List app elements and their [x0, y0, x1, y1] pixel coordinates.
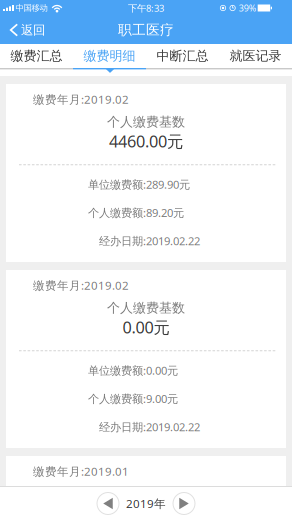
button[interactable]: 就医记录 — [219, 44, 292, 68]
staticText: 返回 — [21, 22, 45, 38]
button[interactable]: Previous year — [96, 491, 120, 515]
staticText: 2019.02.22 — [146, 233, 200, 248]
staticText: 个人缴费基数 — [107, 300, 185, 316]
staticText: 中断汇总 — [156, 48, 208, 64]
staticText: 2019年 — [126, 496, 166, 511]
staticText: 职工医疗 — [118, 21, 174, 39]
button[interactable]: 缴费汇总 — [0, 44, 73, 68]
staticText: 中国移动 — [15, 3, 47, 13]
button[interactable]: 返回 — [0, 16, 53, 44]
staticText: 4460.00元 — [109, 130, 183, 152]
button[interactable]: 中断汇总 — [146, 44, 219, 68]
staticText: 下午8:33 — [128, 2, 164, 14]
staticText: 缴费汇总 — [10, 48, 62, 64]
staticText: 39% — [239, 2, 256, 14]
staticText: 个人缴费基数 — [107, 114, 185, 130]
staticText: 缴费年月:2019.02 — [33, 277, 129, 293]
staticText: 0.00元 — [122, 502, 169, 520]
staticText: 经办日期: — [99, 233, 146, 248]
staticText: 单位缴费额: — [88, 177, 146, 192]
staticText: 289.90元 — [146, 177, 190, 192]
staticText: 个人缴费基数 — [107, 486, 185, 502]
button[interactable]: 缴费明细 — [73, 44, 146, 68]
staticText: 就医记录 — [229, 48, 281, 64]
staticText: 0.00元 — [146, 363, 178, 378]
staticText: 2019.02.22 — [146, 419, 200, 434]
staticText: 单位缴费额: — [88, 363, 146, 378]
staticText: 缴费年月:2019.02 — [33, 91, 129, 107]
staticText: 个人缴费额: — [88, 205, 146, 220]
staticText: 缴费年月:2019.01 — [33, 463, 129, 479]
staticText: 缴费明细 — [83, 48, 135, 64]
staticText: 个人缴费额: — [88, 391, 146, 406]
staticText: 9.00元 — [146, 391, 178, 406]
button[interactable]: Next year — [172, 491, 196, 515]
staticText: 0.00元 — [122, 316, 169, 338]
staticText: 经办日期: — [99, 419, 146, 434]
staticText: 89.20元 — [146, 205, 184, 220]
